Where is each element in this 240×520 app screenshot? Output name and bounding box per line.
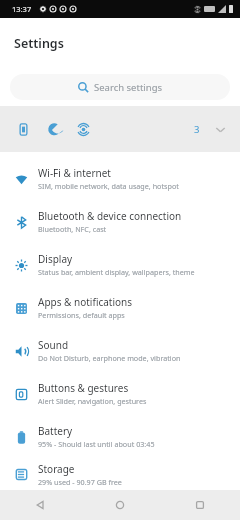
button[interactable]: Hotspot xyxy=(72,118,94,140)
staticText: Display xyxy=(38,252,73,266)
staticText: 3 xyxy=(194,123,200,136)
button[interactable]: Sound xyxy=(0,329,240,372)
staticText: 29% used - 90.97 GB free xyxy=(38,477,122,487)
staticText: Bluetooth, NFC, cast xyxy=(38,224,107,234)
button[interactable]: Wi-Fi & internet xyxy=(0,157,240,200)
staticText: Settings xyxy=(14,35,64,52)
staticText: Search settings xyxy=(94,81,163,94)
staticText: Sound xyxy=(38,338,69,352)
staticText: Apps & notifications xyxy=(38,295,133,309)
staticText: 95% - Should last until about 03:45 xyxy=(38,439,155,449)
button[interactable]: Search settings xyxy=(10,74,230,100)
button[interactable]: Apps & notifications xyxy=(0,286,240,329)
staticText: Status bar, ambient display, wallpapers,… xyxy=(38,267,195,277)
staticText: Do Not Disturb, earphone mode, vibration xyxy=(38,353,181,363)
staticText: 13:37 xyxy=(12,4,32,14)
button[interactable]: Do not disturb xyxy=(42,118,64,140)
button[interactable]: Battery saver xyxy=(12,118,34,140)
button[interactable]: Home xyxy=(80,490,160,520)
staticText: Permissions, default apps xyxy=(38,310,125,320)
staticText: Battery xyxy=(38,424,73,438)
button[interactable]: Storage xyxy=(0,458,240,490)
staticText: Bluetooth & device connection xyxy=(38,209,182,223)
button[interactable]: Recents xyxy=(160,490,240,520)
button[interactable]: Expand xyxy=(210,119,230,139)
staticText: Storage xyxy=(38,462,75,476)
staticText: Alert Slider, navigation, gestures xyxy=(38,396,147,406)
button[interactable]: Battery xyxy=(0,415,240,458)
button[interactable]: Back xyxy=(0,490,80,520)
button[interactable]: Buttons & gestures xyxy=(0,372,240,415)
staticText: SIM, mobile network, data usage, hotspot xyxy=(38,181,179,191)
staticText: Wi-Fi & internet xyxy=(38,166,111,180)
button[interactable]: Bluetooth & device connection xyxy=(0,200,240,243)
staticText: Buttons & gestures xyxy=(38,381,129,395)
button[interactable]: Display xyxy=(0,243,240,286)
